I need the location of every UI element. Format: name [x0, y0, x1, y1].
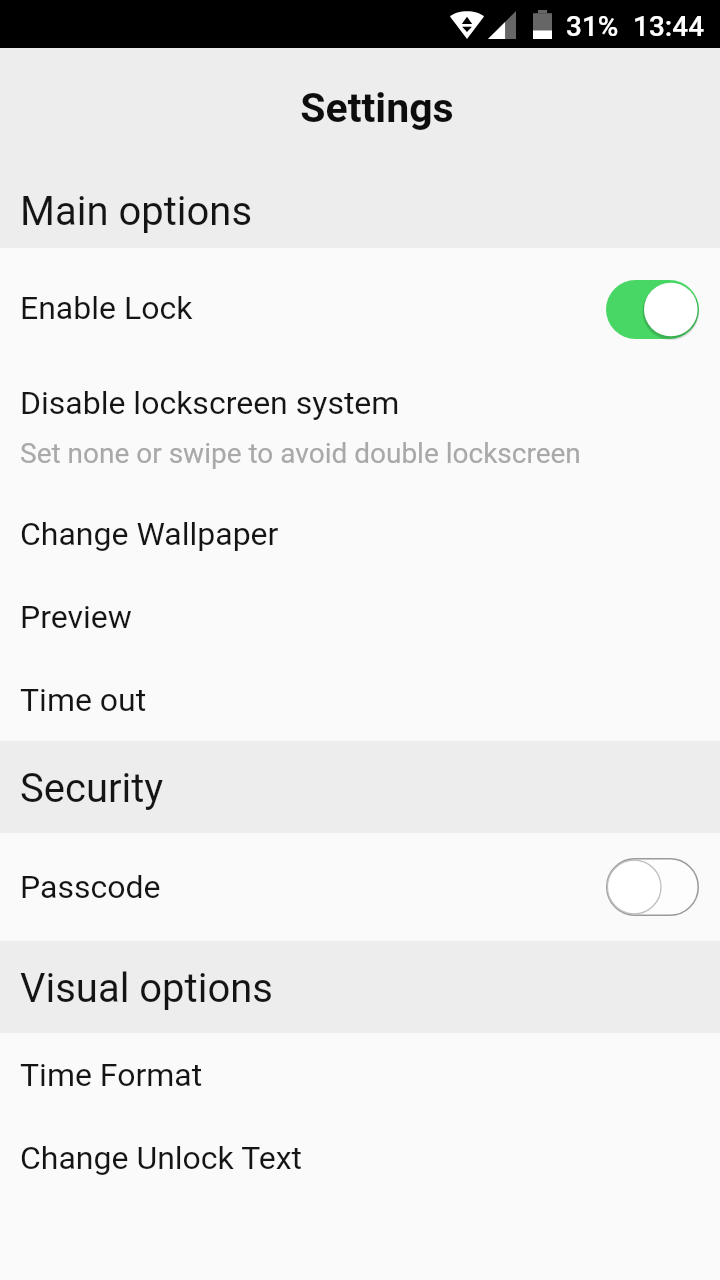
button[interactable]: Time out	[0, 658, 720, 741]
staticText: Enable Lock	[20, 289, 193, 327]
other: Wi-Fi	[450, 11, 484, 39]
staticText: Change Wallpaper	[20, 515, 279, 553]
button[interactable]: Time Format	[0, 1033, 720, 1116]
staticText: Change Unlock Text	[20, 1139, 302, 1177]
button[interactable]: Change Unlock Text	[0, 1116, 720, 1199]
staticText: Time Format	[20, 1056, 203, 1094]
staticText: Preview	[20, 598, 132, 636]
button[interactable]: Switch off	[606, 858, 699, 916]
staticText: Visual options	[20, 965, 273, 1012]
staticText: 13:44	[633, 10, 705, 43]
other: Battery 31 percent	[533, 10, 552, 39]
staticText: Settings	[300, 84, 454, 132]
staticText: Set none or swipe to avoid double locksc…	[20, 437, 581, 470]
other: Cellular signal	[488, 11, 516, 39]
staticText: 31%	[566, 10, 619, 43]
staticText: Passcode	[20, 868, 161, 906]
staticText: Security	[20, 765, 164, 812]
button[interactable]: Enable Lock	[0, 248, 720, 368]
staticText: Time out	[20, 681, 147, 719]
button[interactable]: Switch on	[606, 280, 699, 339]
button[interactable]: Passcode	[0, 833, 720, 941]
button[interactable]: Preview	[0, 575, 720, 658]
button[interactable]: Change Wallpaper	[0, 492, 720, 575]
button[interactable]: Disable lockscreen system	[0, 368, 720, 492]
staticText: Disable lockscreen system	[20, 384, 400, 422]
staticText: Main options	[20, 188, 253, 235]
